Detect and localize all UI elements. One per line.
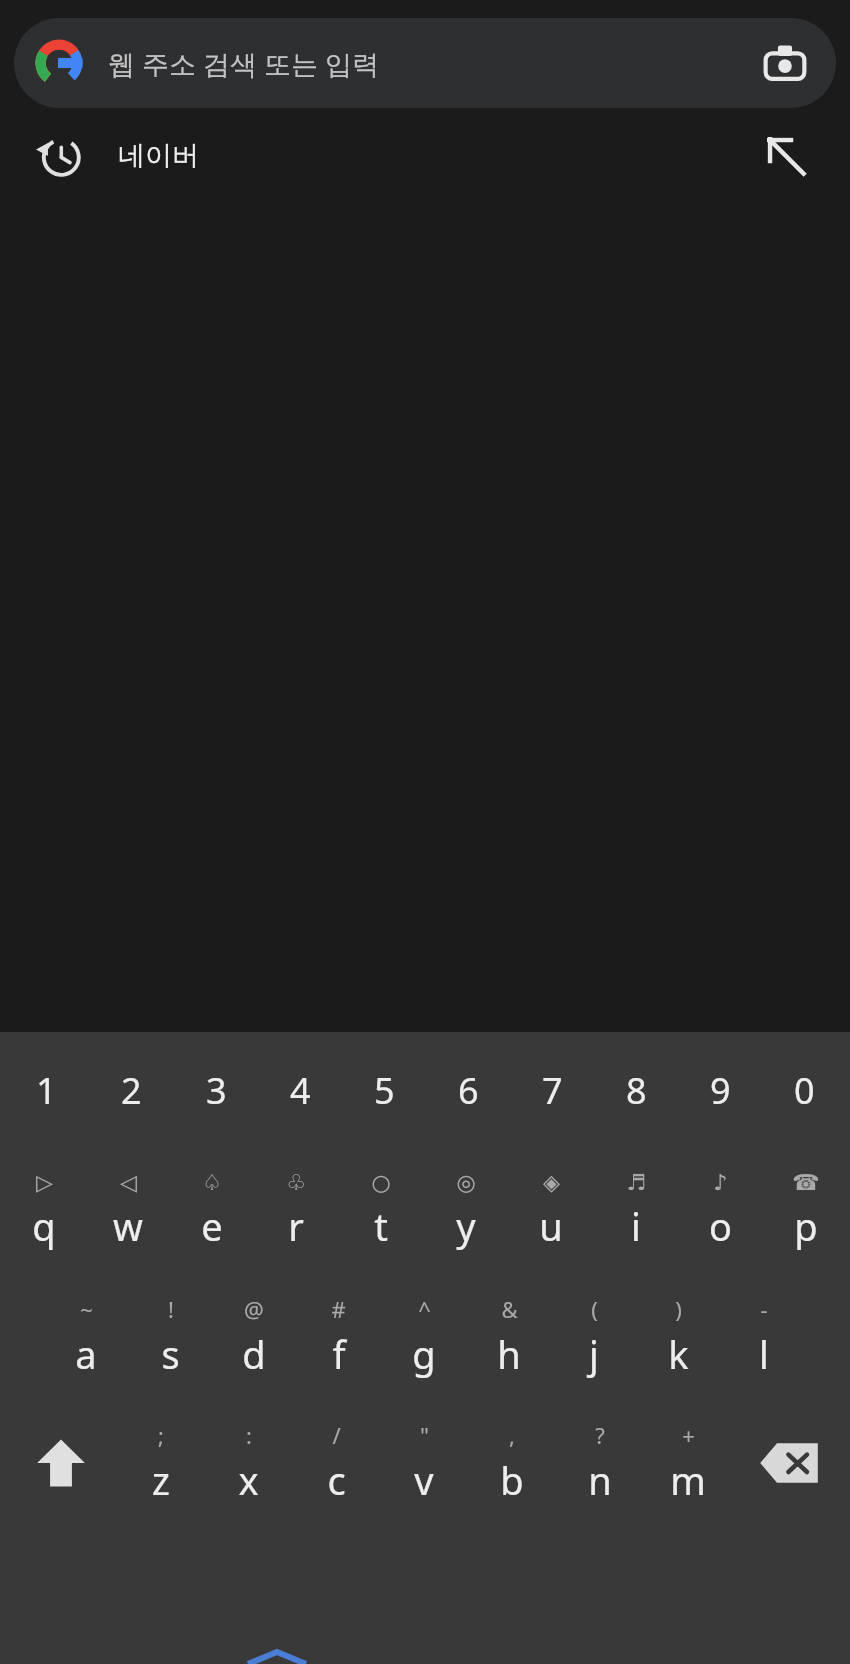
staticText: ^: [418, 1294, 431, 1324]
button[interactable]: ☎: [763, 1148, 848, 1274]
staticText: ◁: [120, 1170, 137, 1196]
button[interactable]: ♪: [678, 1148, 763, 1274]
button[interactable]: -: [721, 1274, 806, 1400]
staticText: ~: [80, 1294, 93, 1324]
button[interactable]: 1: [4, 1032, 89, 1148]
button[interactable]: ♬: [593, 1148, 678, 1274]
button[interactable]: &: [466, 1274, 551, 1400]
button[interactable]: 6: [426, 1032, 510, 1148]
staticText: q: [32, 1200, 56, 1252]
staticText: l: [759, 1328, 769, 1380]
staticText: 웹 주소 검색 또는 입력: [108, 45, 380, 82]
button[interactable]: (: [551, 1274, 636, 1400]
staticText: w: [113, 1200, 143, 1252]
button[interactable]: ): [636, 1274, 721, 1400]
staticText: @: [244, 1294, 264, 1324]
button[interactable]: ♤: [170, 1148, 254, 1274]
staticText: 9: [710, 1066, 731, 1115]
staticText: ▷: [36, 1170, 53, 1196]
button[interactable]: 네이버: [0, 108, 850, 204]
staticText: /: [332, 1420, 341, 1450]
button[interactable]: 7: [510, 1032, 594, 1148]
staticText: g: [412, 1328, 436, 1380]
staticText: 4: [290, 1066, 311, 1115]
button[interactable]: #: [296, 1274, 381, 1400]
staticText: -: [760, 1294, 768, 1324]
button[interactable]: 4: [258, 1032, 342, 1148]
button[interactable]: 0: [762, 1032, 846, 1148]
staticText: o: [709, 1200, 732, 1252]
staticText: 8: [626, 1066, 647, 1115]
button[interactable]: 9: [678, 1032, 762, 1148]
button[interactable]: @: [212, 1274, 296, 1400]
staticText: z: [152, 1454, 170, 1506]
staticText: u: [539, 1200, 563, 1252]
button[interactable]: Backspace: [732, 1400, 846, 1526]
button[interactable]: 웹 주소 검색 또는 입력: [14, 18, 836, 108]
staticText: 3: [206, 1066, 227, 1115]
button[interactable]: ~: [44, 1274, 128, 1400]
staticText: e: [201, 1200, 223, 1252]
button[interactable]: ,: [468, 1400, 556, 1526]
staticText: s: [161, 1328, 180, 1380]
staticText: ♬: [626, 1170, 646, 1196]
staticText: #: [331, 1294, 346, 1324]
button[interactable]: ": [380, 1400, 468, 1526]
button[interactable]: 3: [174, 1032, 258, 1148]
button[interactable]: ?: [556, 1400, 644, 1526]
staticText: p: [794, 1200, 818, 1252]
staticText: ○: [371, 1170, 391, 1196]
button[interactable]: /: [292, 1400, 380, 1526]
button[interactable]: 2: [89, 1032, 174, 1148]
staticText: (: [591, 1294, 598, 1324]
staticText: +: [682, 1420, 695, 1450]
staticText: 6: [458, 1066, 479, 1115]
staticText: 7: [542, 1066, 563, 1115]
staticText: x: [238, 1454, 259, 1506]
staticText: ◈: [543, 1170, 560, 1196]
staticText: m: [670, 1454, 706, 1506]
button[interactable]: ^: [381, 1274, 466, 1400]
staticText: ": [420, 1420, 429, 1450]
staticText: k: [668, 1328, 689, 1380]
staticText: &: [501, 1294, 518, 1324]
staticText: d: [242, 1328, 266, 1380]
button[interactable]: ◁: [86, 1148, 170, 1274]
button[interactable]: ♧: [254, 1148, 338, 1274]
staticText: ♧: [286, 1170, 306, 1196]
button[interactable]: Search with camera: [758, 36, 812, 90]
button[interactable]: ▷: [2, 1148, 86, 1274]
staticText: 네이버: [118, 139, 199, 173]
staticText: j: [589, 1328, 599, 1380]
staticText: :: [246, 1420, 252, 1450]
button[interactable]: ;: [117, 1400, 204, 1526]
staticText: 1: [36, 1066, 57, 1115]
staticText: ,: [509, 1420, 515, 1450]
button[interactable]: ◈: [508, 1148, 593, 1274]
button[interactable]: Shift: [4, 1400, 117, 1526]
staticText: b: [500, 1454, 524, 1506]
button[interactable]: ◎: [423, 1148, 508, 1274]
staticText: t: [374, 1200, 388, 1252]
button[interactable]: ○: [338, 1148, 423, 1274]
staticText: ◎: [456, 1170, 476, 1196]
staticText: y: [456, 1200, 476, 1252]
staticText: ;: [158, 1420, 164, 1450]
staticText: n: [588, 1454, 612, 1506]
button[interactable]: 8: [594, 1032, 678, 1148]
staticText: v: [414, 1454, 434, 1506]
button[interactable]: 5: [342, 1032, 426, 1148]
button[interactable]: +: [644, 1400, 732, 1526]
staticText: !: [168, 1294, 174, 1324]
button[interactable]: :: [204, 1400, 292, 1526]
staticText: r: [288, 1200, 304, 1252]
staticText: 2: [121, 1066, 142, 1115]
staticText: a: [75, 1328, 97, 1380]
button[interactable]: Insert suggestion into search box: [744, 114, 828, 198]
staticText: ☎: [792, 1170, 820, 1196]
staticText: ♪: [713, 1170, 728, 1196]
staticText: h: [497, 1328, 521, 1380]
staticText: 0: [794, 1066, 815, 1115]
staticText: ): [675, 1294, 682, 1324]
button[interactable]: !: [128, 1274, 212, 1400]
